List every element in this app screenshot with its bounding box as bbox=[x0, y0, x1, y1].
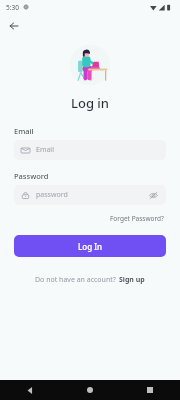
button[interactable]: password bbox=[14, 185, 166, 205]
button[interactable]: Email bbox=[14, 140, 166, 160]
staticText: Forget Password? bbox=[110, 214, 164, 223]
button[interactable]: Sign up bbox=[118, 273, 146, 287]
staticText: Email bbox=[36, 145, 159, 155]
staticText: Do not have an account? bbox=[35, 275, 118, 285]
button[interactable]: Back bbox=[4, 16, 24, 36]
button[interactable]: Back bbox=[22, 382, 38, 398]
staticText: Email bbox=[14, 126, 34, 136]
button[interactable]: Log In bbox=[14, 235, 166, 257]
staticText: Log In bbox=[78, 241, 103, 252]
staticText: Password bbox=[14, 171, 49, 181]
staticText: Sign up bbox=[119, 275, 145, 285]
staticText: 5:30 bbox=[6, 3, 19, 12]
button[interactable]: Show password bbox=[147, 189, 159, 201]
staticText: password bbox=[36, 190, 147, 200]
button[interactable]: Forget Password? bbox=[108, 212, 166, 225]
button[interactable]: Home bbox=[82, 382, 98, 398]
staticText: Log in bbox=[0, 94, 180, 112]
button[interactable]: Recent apps bbox=[142, 382, 158, 398]
